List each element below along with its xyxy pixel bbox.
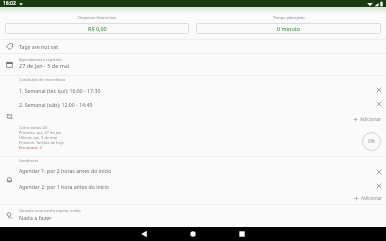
staticText: Agendar 2: por 1 hora antes do início [19, 183, 109, 190]
staticText: Agendamento repetido [19, 57, 62, 62]
button[interactable]: Recents [233, 227, 251, 241]
staticText: 16:02 [3, 0, 16, 7]
button[interactable]: Agendar 1: por 2 horas antes do início [0, 163, 386, 177]
button[interactable]: Adicionar [351, 115, 384, 124]
button[interactable]: 0 minuto [196, 23, 381, 34]
staticText: Adicionar [361, 195, 383, 202]
staticText: Quando uma tarefa expirar, então [19, 208, 81, 213]
button[interactable]: Remover recorrência 1 [373, 84, 385, 96]
staticText: Agendar 1: por 2 horas antes do início [19, 167, 112, 174]
staticText: Tempo planejado [273, 15, 305, 20]
button[interactable]: 2. Semanal (sáb); 12:00 - 14:45 [0, 98, 386, 111]
staticText: 27 de jan - 5 de mai [19, 62, 70, 69]
staticText: Despesas financeiras [78, 15, 117, 20]
staticText: Primeiro: qui, 27 de jan [19, 130, 62, 135]
staticText: 2. Semanal (sáb); 12:00 - 14:45 [19, 101, 93, 108]
button[interactable]: Remover lembrete 2 [373, 180, 385, 192]
button[interactable]: Agendar 2: por 1 hora antes do início [0, 179, 386, 193]
button[interactable]: Remover lembrete 1 [373, 166, 385, 178]
staticText: Ciclos totais: 43 [19, 125, 48, 130]
button[interactable]: 1. Semanal (ter, qui); 16:00 - 17:30 [0, 84, 386, 97]
button[interactable]: Adicionar [352, 194, 385, 203]
staticText: Adicionar [360, 116, 382, 123]
button[interactable]: R$ 0,00 [5, 23, 189, 34]
staticText: 1. Semanal (ter, qui); 16:00 - 17:30 [19, 87, 101, 94]
button[interactable]: Back [135, 227, 153, 241]
staticText: 0% [368, 138, 376, 145]
staticText: Condições de recorrência [19, 77, 66, 82]
staticText: Em atraso: 2 [19, 145, 42, 150]
button[interactable]: 0% [362, 132, 381, 151]
staticText: Lembretes [19, 158, 39, 163]
button[interactable]: Tags are not set [0, 39, 386, 53]
staticText: Nada a fazer [19, 214, 52, 221]
staticText: Último: qui, 5 de mai [19, 135, 57, 140]
staticText: R$ 0,00 [88, 25, 107, 32]
staticText: Tags are not set [19, 43, 59, 50]
button[interactable]: Quando uma tarefa expirar, então [0, 204, 386, 226]
staticText: Próximo: Tarefas de hoje [19, 140, 64, 145]
staticText: 0 minuto [277, 25, 301, 32]
button[interactable]: Remover recorrência 2 [373, 98, 385, 110]
button[interactable]: Agendamento repetido [0, 53, 386, 75]
button[interactable]: Home [184, 227, 202, 241]
